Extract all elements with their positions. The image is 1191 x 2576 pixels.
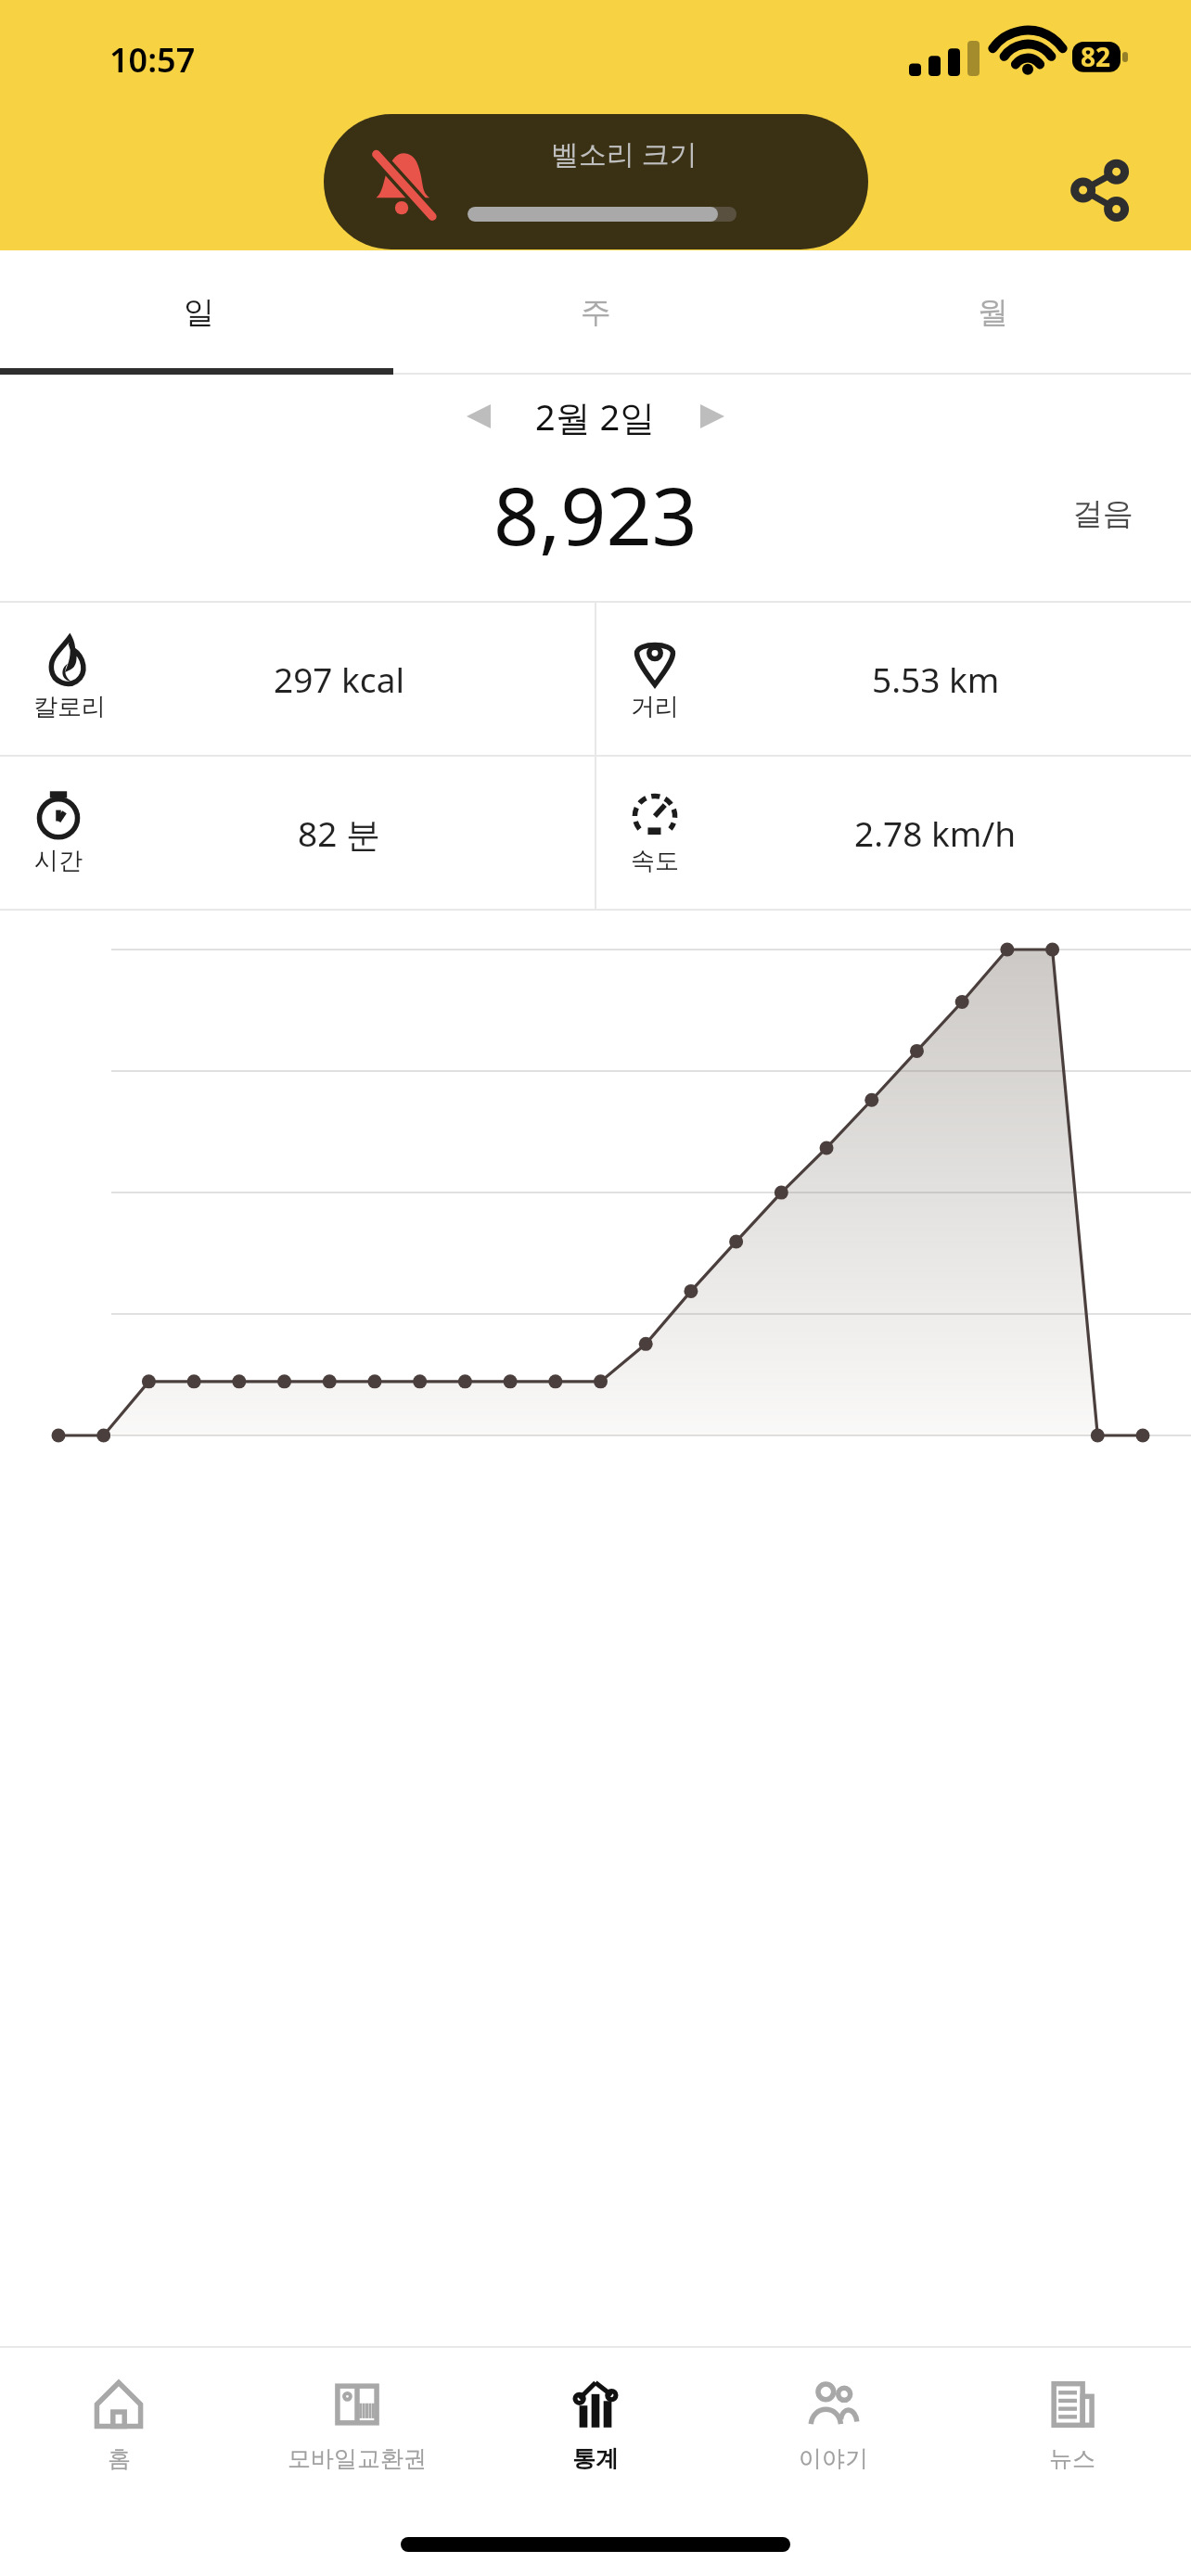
button[interactable]: 이전 날짜	[446, 384, 511, 449]
button[interactable]: 공유	[1048, 139, 1150, 241]
button[interactable]: 주	[397, 250, 794, 375]
staticText: 이야기	[799, 2444, 868, 2473]
button[interactable]: 통계	[476, 2346, 714, 2502]
staticText: 주	[581, 293, 611, 332]
staticText: 82	[1081, 39, 1111, 74]
staticText: 2월 2일	[535, 392, 656, 440]
staticText: 8,923	[493, 460, 698, 568]
button[interactable]: 홈	[0, 2346, 237, 2502]
button[interactable]: 칼로리	[0, 603, 595, 755]
button[interactable]: 시간	[0, 757, 595, 909]
staticText: 홈	[108, 2444, 131, 2473]
button[interactable]: 다음 날짜	[680, 384, 745, 449]
staticText: 2.78 km/h	[854, 810, 1017, 856]
staticText: 82 분	[298, 810, 380, 857]
button[interactable]: 일	[0, 250, 397, 375]
staticText: 297 kcal	[274, 656, 404, 702]
button[interactable]: 월	[794, 250, 1191, 375]
staticText: 뉴스	[1049, 2444, 1095, 2473]
button[interactable]: 뉴스	[953, 2346, 1191, 2502]
staticText: 10:57	[109, 37, 196, 83]
staticText: 모바일교환권	[288, 2444, 427, 2473]
staticText: 통계	[572, 2444, 619, 2473]
staticText: 거리	[631, 692, 679, 722]
staticText: 일	[184, 293, 214, 332]
staticText: 시간	[34, 846, 83, 876]
staticText: 칼로리	[33, 692, 106, 722]
staticText: 5.53 km	[872, 656, 1000, 702]
staticText: 벨소리 크기	[551, 134, 698, 172]
staticText: 월	[978, 293, 1008, 332]
staticText: 속도	[631, 846, 679, 876]
staticText: 걸음	[1072, 494, 1133, 533]
button[interactable]: 거리	[596, 603, 1191, 755]
button[interactable]: 모바일교환권	[237, 2346, 476, 2502]
button[interactable]: 속도	[596, 757, 1191, 909]
button[interactable]: 이야기	[714, 2346, 953, 2502]
